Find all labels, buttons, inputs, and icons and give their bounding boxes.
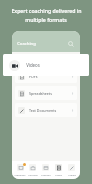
button[interactable]: PDFs [15, 69, 77, 83]
staticText: multiple formats [25, 16, 67, 23]
button[interactable]: Create [65, 161, 78, 179]
staticText: Coaching [17, 41, 36, 47]
button[interactable]: Search [67, 40, 75, 48]
staticText: Notes [55, 173, 62, 176]
button[interactable]: Videos [3, 54, 89, 76]
button[interactable]: Notes [52, 161, 65, 179]
button[interactable]: Text Documents [15, 103, 77, 117]
staticText: Spreadsheets [29, 91, 52, 96]
button[interactable]: Webinars [14, 161, 26, 179]
button[interactable]: Spreadsheets [15, 86, 77, 100]
staticText: Expert coaching delivered in [11, 7, 82, 14]
staticText: PDFs [29, 74, 38, 79]
button[interactable]: Playlists [39, 161, 52, 179]
staticText: Playlists [41, 173, 51, 176]
staticText: Videos [26, 62, 40, 68]
staticText: Create [68, 173, 76, 176]
staticText: Courses [28, 173, 38, 176]
button[interactable]: Courses [26, 161, 39, 179]
staticText: Text Documents [29, 108, 57, 113]
staticText: Webinars [14, 173, 26, 176]
